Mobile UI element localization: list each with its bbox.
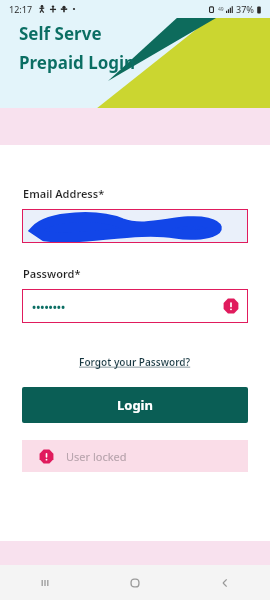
staticText: Email Address* (23, 186, 105, 201)
staticText: 49 (218, 6, 224, 13)
staticText: Password* (23, 266, 81, 281)
staticText: Prepaid Login (19, 51, 136, 74)
staticText: 37% (236, 3, 254, 15)
button[interactable]: Home (90, 565, 180, 600)
button[interactable] (22, 209, 248, 243)
staticText: User locked (66, 449, 127, 464)
staticText: 12:17 (9, 3, 33, 15)
staticText: Login (117, 396, 153, 414)
staticText: •••••••• (32, 299, 66, 314)
button[interactable]: •••••••• (22, 289, 248, 323)
button[interactable]: Recent apps (0, 565, 90, 600)
button[interactable]: Back (180, 565, 270, 600)
other: Password error (223, 298, 239, 314)
button[interactable]: Login (22, 387, 248, 423)
staticText: Self Serve (19, 22, 102, 45)
button[interactable]: Forgot your Password? (75, 351, 195, 373)
